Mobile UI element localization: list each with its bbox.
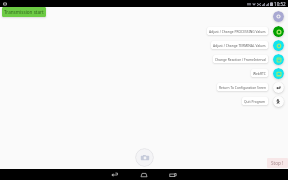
staticText: Adjust / Change PROCESSING Values <box>209 29 266 33</box>
button[interactable]: Return To Configuration Sreen <box>217 80 284 94</box>
button[interactable]: Stop ! <box>267 158 288 168</box>
button[interactable]: Recents <box>162 169 184 180</box>
button[interactable]: Open actions menu <box>273 11 284 22</box>
button[interactable]: Back <box>104 169 126 180</box>
staticText: Transmission start <box>4 9 44 15</box>
button[interactable]: Adjust / Change TERMINAL Values <box>211 38 284 52</box>
button[interactable]: Home <box>133 169 155 180</box>
staticText: Adjust / Change TERMINAL Values <box>213 43 266 47</box>
staticText: Return To Configuration Sreen <box>219 85 266 89</box>
staticText: Stop ! <box>271 160 284 166</box>
button[interactable]: Transmission start <box>2 7 46 17</box>
button[interactable]: Capture photo <box>135 148 154 167</box>
button[interactable]: Quit Program <box>242 94 284 108</box>
staticText: WebRTC <box>253 71 266 75</box>
staticText: Quit Program <box>244 99 266 103</box>
staticText: Change Reaction / FrameInterval <box>215 57 266 61</box>
staticText: 10:52 <box>274 1 286 7</box>
button[interactable]: WebRTC <box>251 66 284 80</box>
button[interactable]: Adjust / Change PROCESSING Values <box>207 24 284 38</box>
button[interactable]: Change Reaction / FrameInterval <box>213 52 284 66</box>
